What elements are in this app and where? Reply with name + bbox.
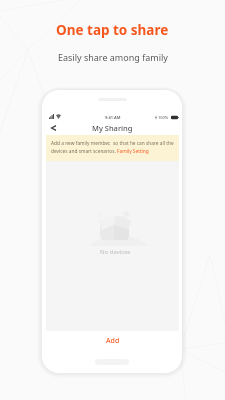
staticText: No devices bbox=[100, 248, 131, 256]
staticText: Add bbox=[106, 336, 120, 346]
staticText: 9:41 AM bbox=[105, 115, 121, 120]
button[interactable]: Add a new family member, so that he can … bbox=[46, 135, 179, 161]
staticText: Easily share among family bbox=[58, 51, 168, 63]
button[interactable]: Back bbox=[46, 121, 61, 135]
staticText: My Sharing bbox=[92, 123, 133, 133]
button[interactable]: Add bbox=[46, 331, 179, 350]
staticText: 100% bbox=[158, 115, 169, 120]
staticText: One tap to share bbox=[56, 21, 169, 39]
staticText: Add a new family member, so that he can … bbox=[51, 140, 176, 155]
